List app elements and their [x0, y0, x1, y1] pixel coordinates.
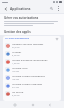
button[interactable]: Android Auto: [3, 65, 61, 73]
button[interactable]: Home: [29, 101, 36, 108]
button[interactable]: Recent apps: [11, 101, 18, 108]
staticText: Applications: [10, 6, 48, 11]
button[interactable]: Addition Services Manager: [3, 41, 61, 49]
staticText: Tri: ordre alphabétique: [5, 37, 55, 40]
button[interactable]: AR Group: [3, 89, 61, 97]
staticText: 212 Mo: [12, 86, 19, 89]
staticText: Alertes d'urgence américaines: [12, 58, 48, 61]
staticText: 6,02 Mo: [12, 94, 20, 97]
button[interactable]: Search: [48, 5, 55, 12]
button[interactable]: Acrobat: [3, 49, 61, 57]
button[interactable]: Back: [46, 101, 53, 108]
button[interactable]: Android System WebView: [3, 81, 61, 89]
staticText: 1,20 Mo: [12, 62, 20, 65]
staticText: Addition Services Manager: [12, 42, 44, 45]
button[interactable]: Back: [2, 5, 9, 12]
staticText: Gestion des applis: [4, 30, 31, 34]
staticText: Android System Intelligence: [12, 74, 45, 77]
staticText: Android Auto: [12, 66, 28, 69]
staticText: Acrobat: [12, 50, 22, 53]
staticText: 8,45 Mo: [12, 54, 20, 57]
button[interactable]: Android System Intelligence: [3, 73, 61, 81]
button[interactable]: Alertes d'urgence américaines: [3, 57, 61, 65]
staticText: Gérer vos autorisations: [4, 16, 39, 20]
staticText: 156 Mo: [12, 78, 19, 81]
staticText: 22,3 Mo: [12, 46, 20, 49]
staticText: Android System WebView: [12, 82, 42, 85]
button[interactable]: Filter: [55, 37, 59, 41]
button[interactable]: More options: [55, 5, 62, 12]
staticText: AR Group: [12, 90, 24, 93]
staticText: 104 Mo: [12, 70, 19, 73]
